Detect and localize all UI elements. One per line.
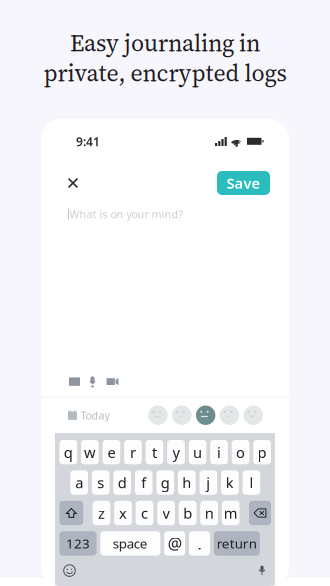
button[interactable]: . <box>189 531 210 556</box>
staticText: i <box>217 442 221 462</box>
staticText: Easy journaling in <box>70 27 260 59</box>
button[interactable]: u <box>189 440 206 464</box>
button[interactable]: Mood 5 <box>243 405 263 425</box>
staticText: l <box>249 473 253 492</box>
button[interactable]: k <box>221 470 239 495</box>
staticText: 9:41 <box>76 133 100 149</box>
button[interactable]: t <box>146 440 163 464</box>
button[interactable]: o <box>232 440 249 464</box>
button[interactable]: e <box>103 440 120 464</box>
staticText: Today <box>80 408 109 422</box>
staticText: What is on your mind? <box>69 207 183 221</box>
button[interactable]: w <box>81 440 99 464</box>
button[interactable]: Emoji <box>63 564 76 577</box>
button[interactable]: j <box>199 470 217 495</box>
button[interactable]: l <box>242 470 260 495</box>
button[interactable]: Save <box>217 171 270 195</box>
staticText: return <box>217 534 257 552</box>
button[interactable]: Mood 2 <box>172 405 192 425</box>
staticText: g <box>161 473 170 492</box>
staticText: o <box>236 442 245 462</box>
staticText: . <box>197 533 201 554</box>
button[interactable]: n <box>200 501 218 525</box>
staticText: f <box>141 473 146 492</box>
button[interactable]: Record audio <box>88 376 97 388</box>
button[interactable]: z <box>93 501 110 525</box>
staticText: x <box>119 503 127 523</box>
button[interactable]: y <box>167 440 185 464</box>
staticText: b <box>183 503 192 523</box>
staticText: t <box>152 442 157 462</box>
staticText: u <box>193 442 202 462</box>
staticText: c <box>141 503 148 523</box>
button[interactable]: Today <box>68 408 109 422</box>
button[interactable]: 123 <box>59 531 96 556</box>
staticText: m <box>224 503 238 523</box>
button[interactable]: Dictation <box>258 565 266 577</box>
button[interactable]: v <box>157 501 175 525</box>
staticText: v <box>163 503 170 523</box>
button[interactable]: @ <box>164 531 185 556</box>
button[interactable]: d <box>113 470 131 495</box>
button[interactable]: m <box>222 501 239 525</box>
staticText: z <box>98 503 105 523</box>
staticText: a <box>75 473 83 492</box>
staticText: d <box>118 473 127 492</box>
button[interactable]: Mood 4 <box>220 405 239 425</box>
staticText: r <box>130 442 136 462</box>
button[interactable]: space <box>100 531 160 556</box>
button[interactable]: h <box>178 470 196 495</box>
staticText: e <box>107 442 115 462</box>
button[interactable]: g <box>156 470 174 495</box>
staticText: space <box>113 534 148 552</box>
staticText: y <box>172 442 179 462</box>
staticText: p <box>258 442 267 462</box>
button[interactable]: q <box>59 440 77 464</box>
button[interactable]: r <box>124 440 142 464</box>
staticText: q <box>64 442 73 462</box>
button[interactable]: Shift <box>59 501 83 525</box>
staticText: private, encrypted logs <box>43 57 286 89</box>
button[interactable]: Mood 3 <box>196 405 215 425</box>
button[interactable]: Delete <box>249 501 271 525</box>
button[interactable]: c <box>136 501 153 525</box>
button[interactable]: return <box>214 531 260 556</box>
staticText: s <box>97 473 104 492</box>
button[interactable]: i <box>210 440 228 464</box>
button[interactable]: f <box>135 470 153 495</box>
staticText: 123 <box>66 534 90 552</box>
button[interactable]: p <box>253 440 271 464</box>
button[interactable]: Close <box>60 170 86 196</box>
button[interactable]: b <box>179 501 196 525</box>
staticText: w <box>84 442 96 462</box>
staticText: j <box>206 473 210 492</box>
button[interactable]: Mood 1 <box>148 405 168 425</box>
button[interactable]: s <box>92 470 109 495</box>
staticText: @ <box>168 533 182 554</box>
button[interactable]: Record video <box>106 376 119 388</box>
staticText: Save <box>226 173 260 193</box>
staticText: k <box>226 473 234 492</box>
button[interactable]: x <box>114 501 132 525</box>
button[interactable]: Add photo <box>68 376 81 388</box>
button[interactable]: a <box>70 470 88 495</box>
staticText: h <box>182 473 191 492</box>
staticText: n <box>205 503 214 523</box>
